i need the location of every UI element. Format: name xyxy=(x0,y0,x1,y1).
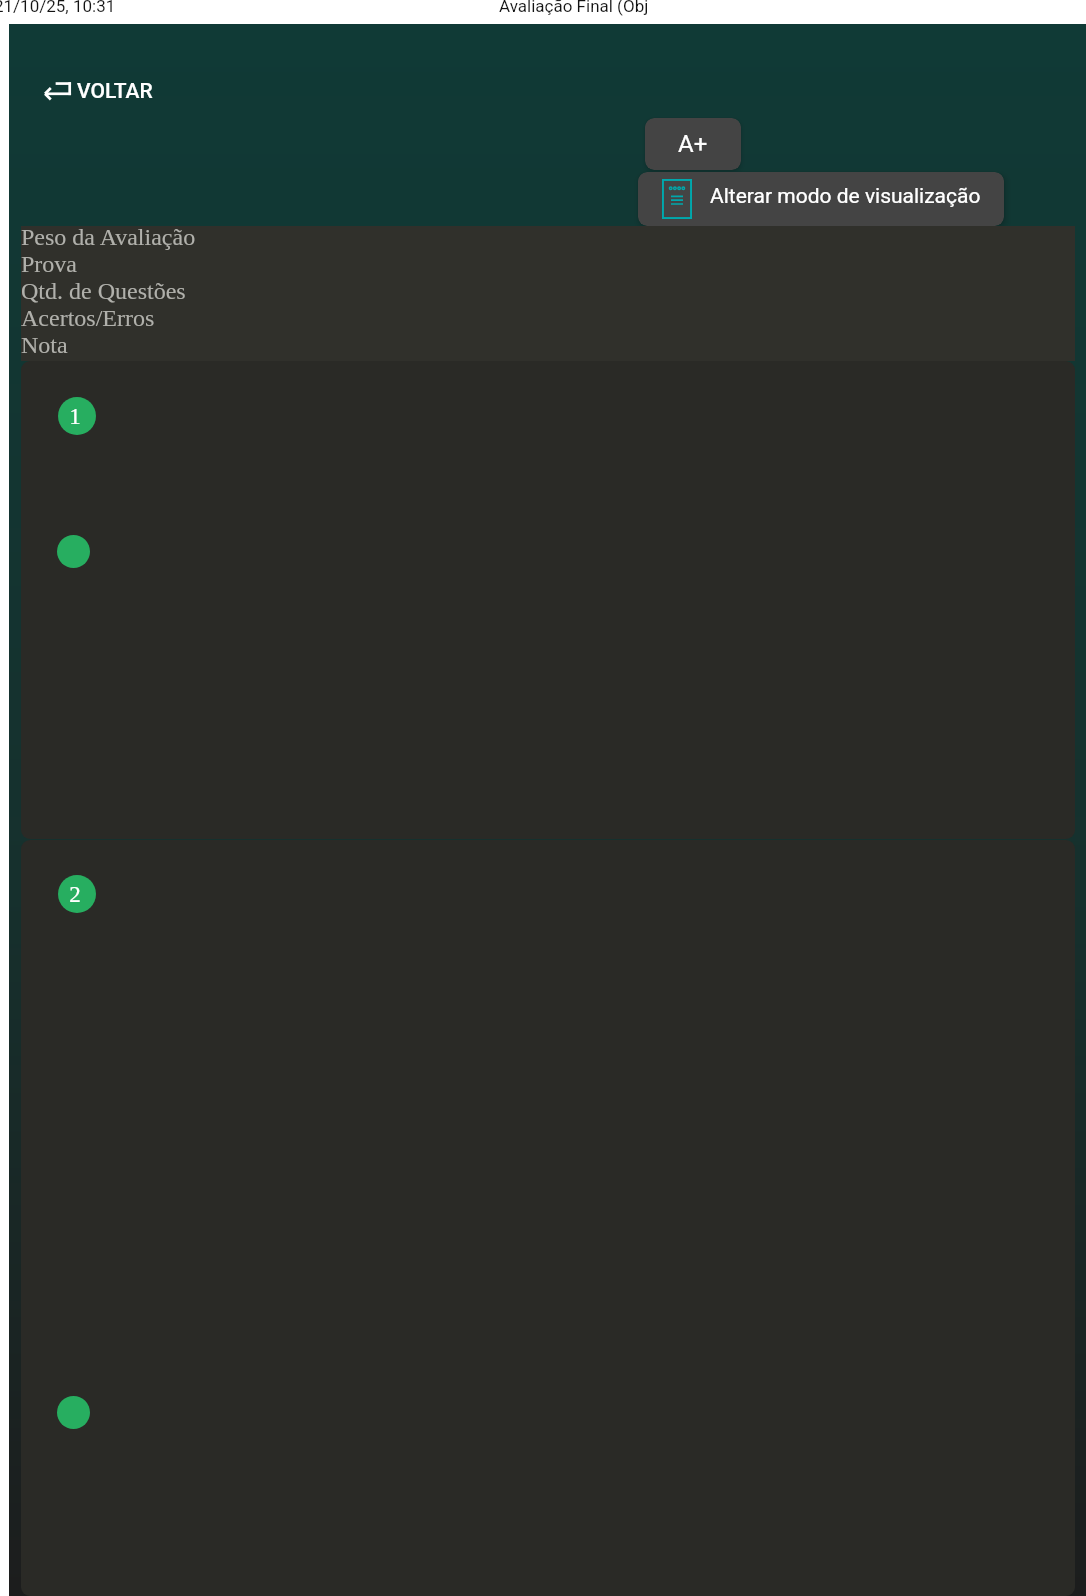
staticText: Prova xyxy=(21,251,77,278)
staticText: Peso da Avaliação xyxy=(21,224,196,251)
staticText: VOLTAR xyxy=(77,79,153,104)
staticText: A+ xyxy=(678,130,708,158)
staticText: 1 xyxy=(69,404,81,429)
staticText: Avaliação Final (Obj xyxy=(499,0,649,16)
button[interactable]: VOLTAR xyxy=(35,68,177,114)
staticText: Qtd. de Questões xyxy=(21,278,186,305)
staticText: Nota xyxy=(21,332,68,359)
staticText: Alterar modo de visualização xyxy=(710,184,981,209)
button[interactable]: Aumentar tamanho da fonte xyxy=(645,118,741,170)
staticText: 21/10/25, 10:31 xyxy=(0,0,116,16)
button[interactable]: 1 xyxy=(21,361,1075,839)
button[interactable]: 2 xyxy=(21,840,1075,1596)
staticText: Acertos/Erros xyxy=(21,305,155,332)
staticText: 2 xyxy=(69,882,81,907)
button[interactable]: Alterar modo de visualização xyxy=(638,172,1004,226)
